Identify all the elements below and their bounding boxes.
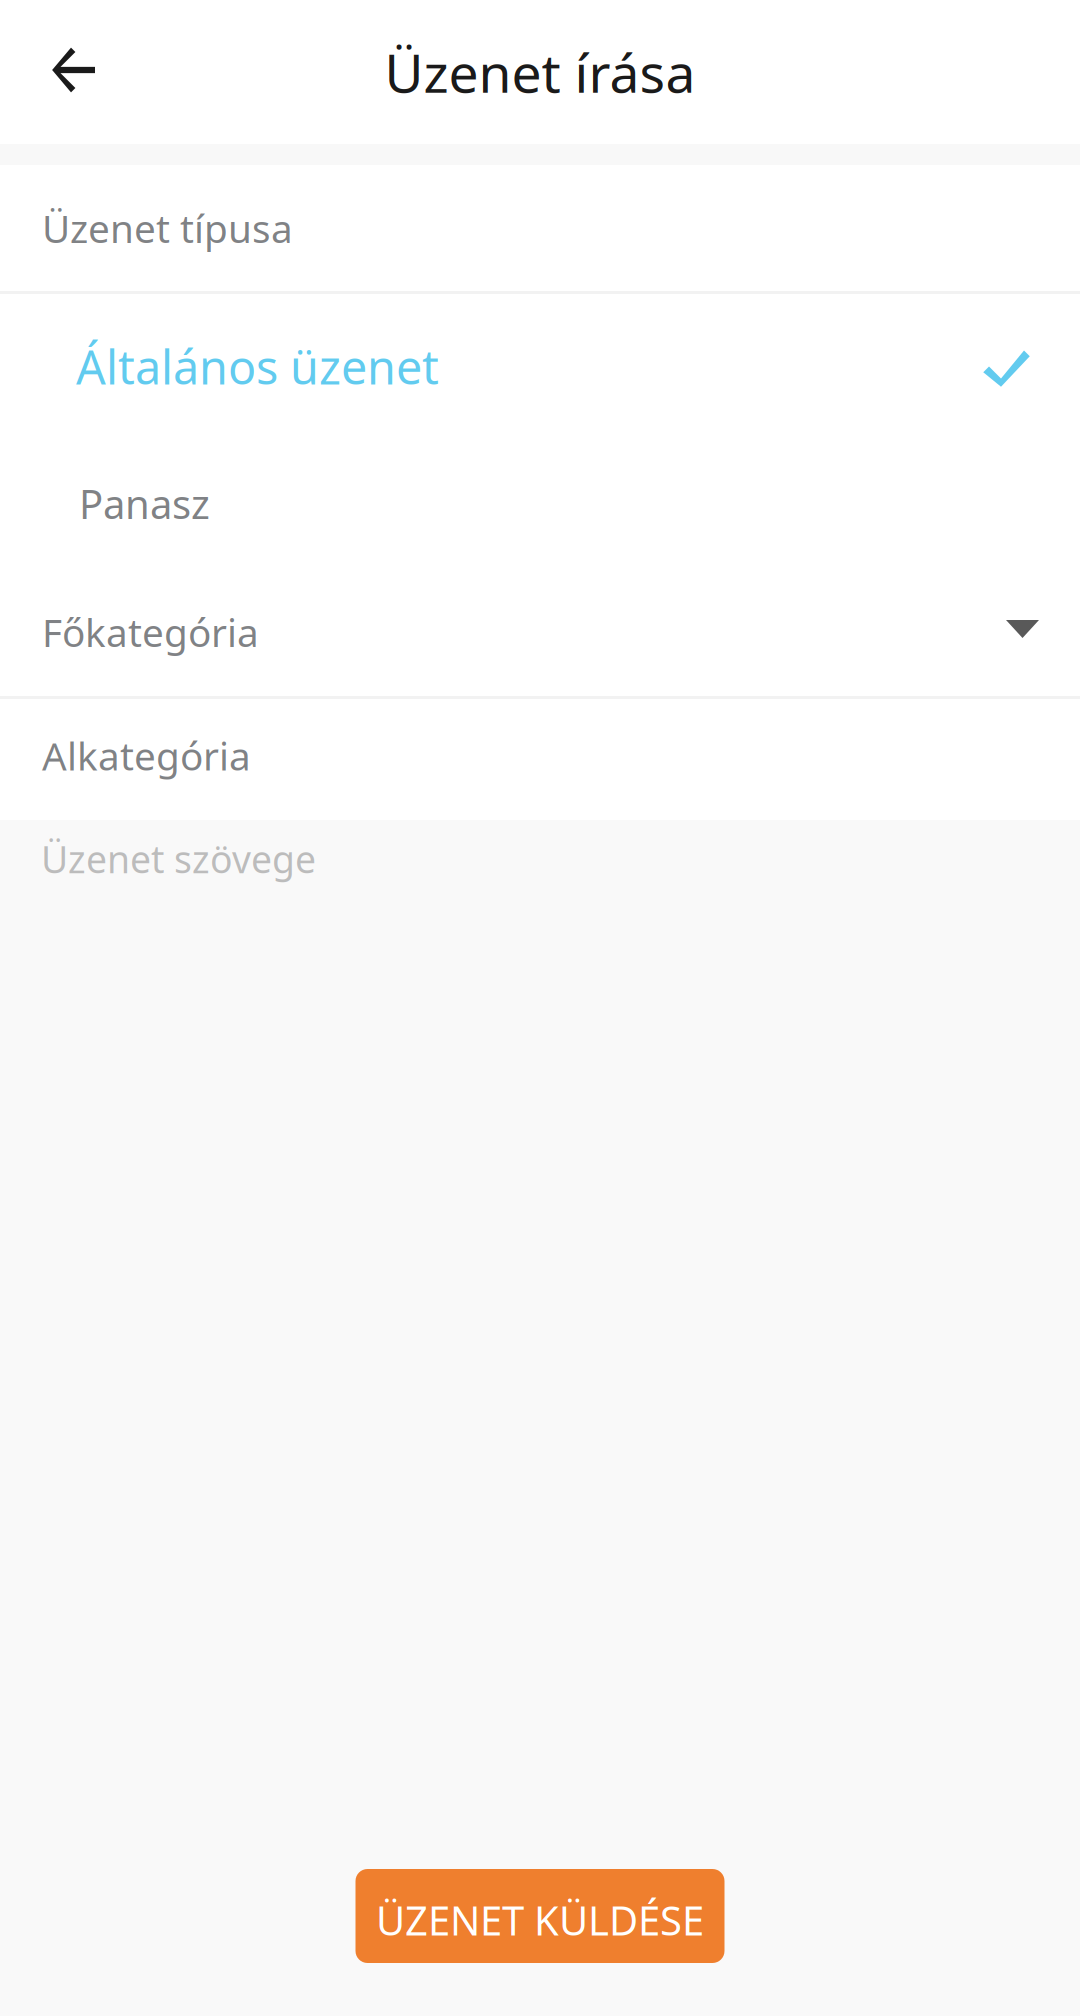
button[interactable]: Alkategória [0, 699, 1080, 820]
staticText: Üzenet típusa [42, 202, 293, 254]
staticText: Főkategória [42, 606, 259, 658]
button[interactable]: ÜZENET KÜLDÉSE [355, 1869, 724, 1963]
button[interactable]: Általános üzenet [0, 294, 1080, 433]
button[interactable]: Főkategória [0, 568, 1080, 696]
staticText: Üzenet írása [384, 37, 695, 107]
staticText: Üzenet szövege [41, 834, 316, 884]
staticText: Általános üzenet [76, 335, 439, 397]
staticText: Panasz [79, 477, 210, 530]
staticText: Alkategória [42, 730, 251, 781]
button[interactable]: Panasz [0, 433, 1080, 568]
button[interactable]: Back [0, 0, 148, 144]
staticText: ÜZENET KÜLDÉSE [376, 1893, 704, 1946]
